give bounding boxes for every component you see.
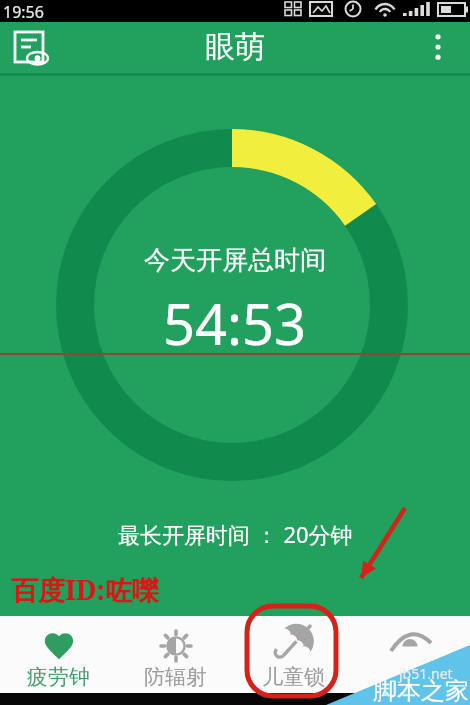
staticText: 疲劳钟	[27, 664, 90, 690]
staticText: jb51.net	[399, 664, 453, 683]
staticText: 儿童锁	[262, 664, 325, 690]
staticText: 百度ID:咗嚛	[11, 571, 159, 603]
staticText: 最长开屏时间 ： 20分钟	[118, 519, 353, 549]
button[interactable]	[406, 22, 470, 76]
button[interactable]: 防辐射	[117, 616, 234, 693]
staticText: 今天开屏总时间	[144, 244, 326, 277]
button[interactable]: 儿童锁	[234, 616, 352, 693]
button[interactable]	[352, 616, 470, 693]
staticText: 54:53	[163, 285, 307, 355]
staticText: 19:56	[3, 1, 44, 23]
button[interactable]: 疲劳钟	[0, 616, 117, 693]
staticText: 防辐射	[144, 664, 207, 690]
button[interactable]	[0, 22, 62, 73]
staticText: 脚本之家	[373, 676, 469, 705]
staticText: 眼萌	[205, 28, 265, 66]
